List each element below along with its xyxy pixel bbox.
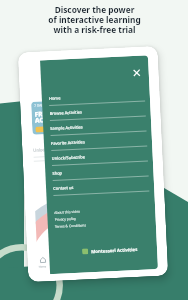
staticText: Home [49,95,61,101]
staticText: About this video [54,209,80,215]
staticText: Unlock/Subscribe [52,154,86,161]
button[interactable]: Close menu [129,66,143,79]
staticText: 7 DAY [34,103,43,108]
button[interactable]: Home [42,91,150,111]
staticText: Home [39,264,47,269]
staticText: Contact us [53,185,74,191]
staticText: Browse Activities [49,109,83,116]
button[interactable]: Terms & Conditions [48,221,87,230]
button[interactable]: Sample Activities [43,121,152,141]
staticText: Sample Activities [50,124,83,131]
staticText: FREE ACT [34,109,51,125]
staticText: Favorite Activities [51,139,85,146]
button[interactable]: Unlock/Subscribe [45,151,153,171]
button[interactable]: Contact us [46,181,155,201]
button[interactable]: Privacy policy [47,215,77,223]
staticText: Terms & Conditions [55,222,87,229]
button[interactable]: About this video [47,208,80,216]
button[interactable]: Home [38,257,47,269]
staticText: Discover the power of interactive learni… [48,4,141,35]
staticText: Privacy policy [54,216,77,222]
button[interactable]: Browse Activities [42,106,151,126]
button[interactable]: Favorite Activities [44,136,152,156]
button[interactable]: Shop [45,166,154,186]
staticText: Shop [52,170,62,176]
staticText: Montessori Activities [91,246,138,254]
staticText: Unlock [33,147,47,154]
